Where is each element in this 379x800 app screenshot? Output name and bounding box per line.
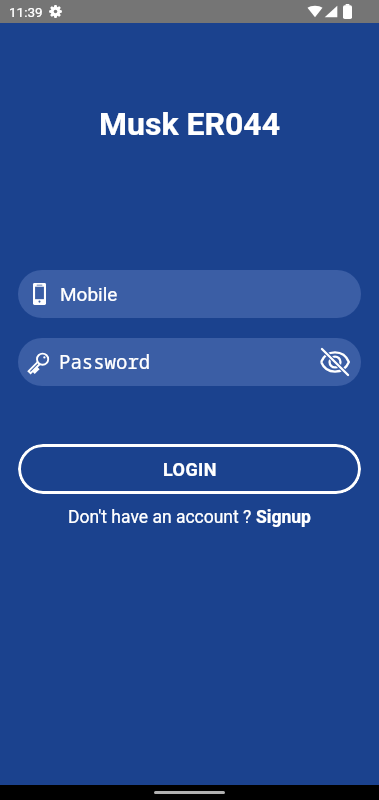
staticText: Mobile: [60, 283, 118, 305]
button[interactable]: Signup: [256, 507, 311, 528]
staticText: Signup: [256, 507, 311, 528]
staticText: Password: [59, 349, 151, 375]
button[interactable]: LOGIN: [18, 444, 361, 494]
staticText: 11:39: [9, 4, 43, 20]
button[interactable]: Password: [18, 338, 361, 386]
staticText: LOGIN: [163, 459, 217, 480]
button[interactable]: Mobile: [18, 270, 361, 318]
staticText: Musk ER044: [0, 105, 379, 143]
staticText: Don't have an account ?: [68, 507, 256, 528]
button[interactable]: Show password: [313, 340, 357, 384]
